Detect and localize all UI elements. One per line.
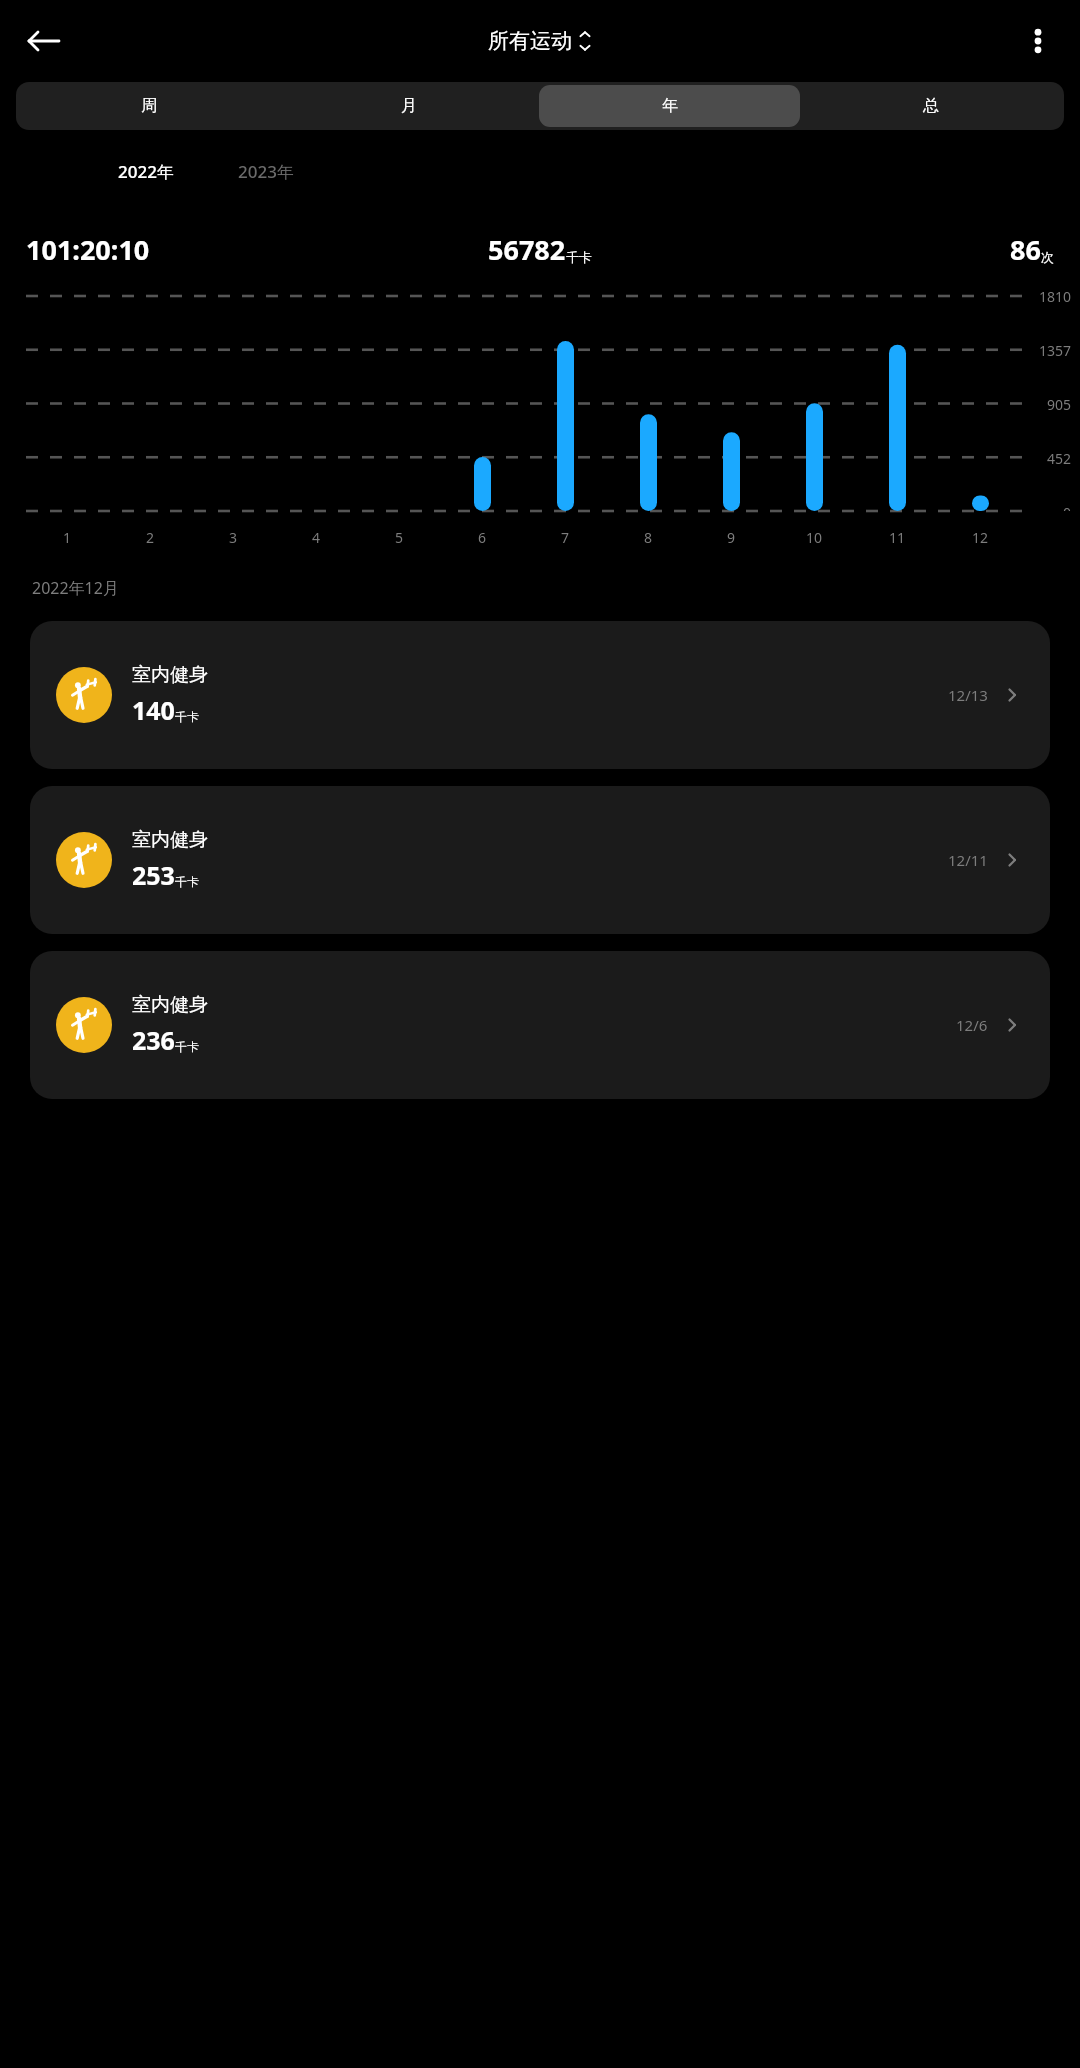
staticText: 千卡 bbox=[175, 874, 199, 889]
staticText: 室内健身 bbox=[132, 828, 208, 852]
staticText: 周 bbox=[141, 96, 157, 116]
staticText: 9 bbox=[727, 528, 736, 547]
staticText: 12/13 bbox=[948, 685, 988, 705]
button[interactable]: 所有运动 bbox=[480, 23, 600, 59]
staticText: 140 bbox=[132, 693, 175, 727]
staticText: 12 bbox=[972, 528, 989, 547]
staticText: 年 bbox=[662, 96, 678, 116]
staticText: 12/6 bbox=[956, 1015, 988, 1035]
staticText: 月 bbox=[401, 96, 417, 116]
button[interactable]: 月 bbox=[279, 85, 539, 127]
button[interactable]: 2022年 bbox=[110, 156, 182, 187]
staticText: 8 bbox=[644, 528, 653, 547]
staticText: 5 bbox=[395, 528, 404, 547]
staticText: 236 bbox=[132, 1023, 175, 1057]
button[interactable]: 2023年 bbox=[230, 156, 302, 187]
staticText: 6 bbox=[478, 528, 487, 547]
staticText: 0 bbox=[1063, 503, 1072, 511]
staticText: 1357 bbox=[1039, 341, 1072, 360]
button[interactable]: 室内健身 bbox=[30, 951, 1050, 1099]
staticText: 2 bbox=[146, 528, 155, 547]
button[interactable]: 室内健身 bbox=[30, 621, 1050, 769]
staticText: 253 bbox=[132, 858, 175, 892]
staticText: 11 bbox=[889, 528, 906, 547]
staticText: 86 bbox=[1010, 231, 1041, 268]
staticText: 总 bbox=[923, 96, 939, 116]
staticText: 2023年 bbox=[238, 160, 294, 183]
staticText: 905 bbox=[1047, 395, 1072, 414]
button[interactable]: 周 bbox=[19, 85, 279, 127]
staticText: 1 bbox=[63, 528, 72, 547]
staticText: 所有运动 bbox=[488, 28, 572, 54]
staticText: 12/11 bbox=[948, 850, 988, 870]
staticText: 次 bbox=[1041, 249, 1054, 265]
staticText: 56782 bbox=[488, 231, 566, 268]
staticText: 室内健身 bbox=[132, 993, 208, 1017]
staticText: 千卡 bbox=[175, 709, 199, 724]
staticText: 4 bbox=[312, 528, 321, 547]
staticText: 2022年12月 bbox=[32, 577, 119, 599]
button[interactable]: More options bbox=[1012, 15, 1064, 67]
staticText: 室内健身 bbox=[132, 663, 208, 687]
staticText: 10 bbox=[806, 528, 823, 547]
staticText: 1810 bbox=[1039, 287, 1072, 306]
button[interactable]: 总 bbox=[800, 85, 1061, 127]
staticText: 千卡 bbox=[175, 1039, 199, 1054]
staticText: 3 bbox=[229, 528, 238, 547]
staticText: 101:20:10 bbox=[26, 231, 150, 268]
staticText: 7 bbox=[561, 528, 570, 547]
staticText: 452 bbox=[1047, 449, 1072, 468]
staticText: 2022年 bbox=[118, 160, 174, 183]
button[interactable]: 年 bbox=[539, 85, 800, 127]
staticText: 千卡 bbox=[566, 249, 592, 265]
button[interactable]: 室内健身 bbox=[30, 786, 1050, 934]
button[interactable]: Back bbox=[16, 13, 72, 69]
